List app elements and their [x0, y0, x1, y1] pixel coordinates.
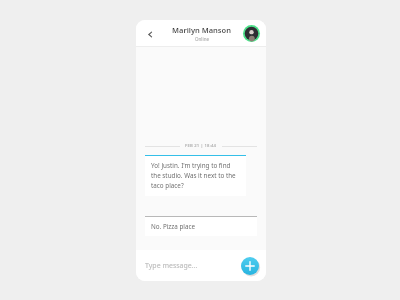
button[interactable]: No. Pizza place — [145, 216, 257, 236]
staticText: Yo! Justin. I'm trying to find the studi… — [151, 161, 240, 190]
staticText: Marilyn Manson — [172, 25, 231, 35]
button[interactable]: Back — [143, 27, 157, 41]
staticText: FEB 21 | 18:44 — [185, 143, 217, 149]
button[interactable]: Type message... — [136, 250, 231, 281]
button[interactable]: Contact profile — [243, 25, 260, 42]
button[interactable]: Yo! Justin. I'm trying to find the studi… — [145, 155, 246, 196]
staticText: Type message... — [145, 261, 198, 271]
staticText: No. Pizza place — [151, 222, 196, 231]
button[interactable]: Marilyn Manson — [172, 25, 231, 42]
button[interactable]: Add attachment — [241, 257, 259, 275]
staticText: Online — [195, 36, 209, 42]
